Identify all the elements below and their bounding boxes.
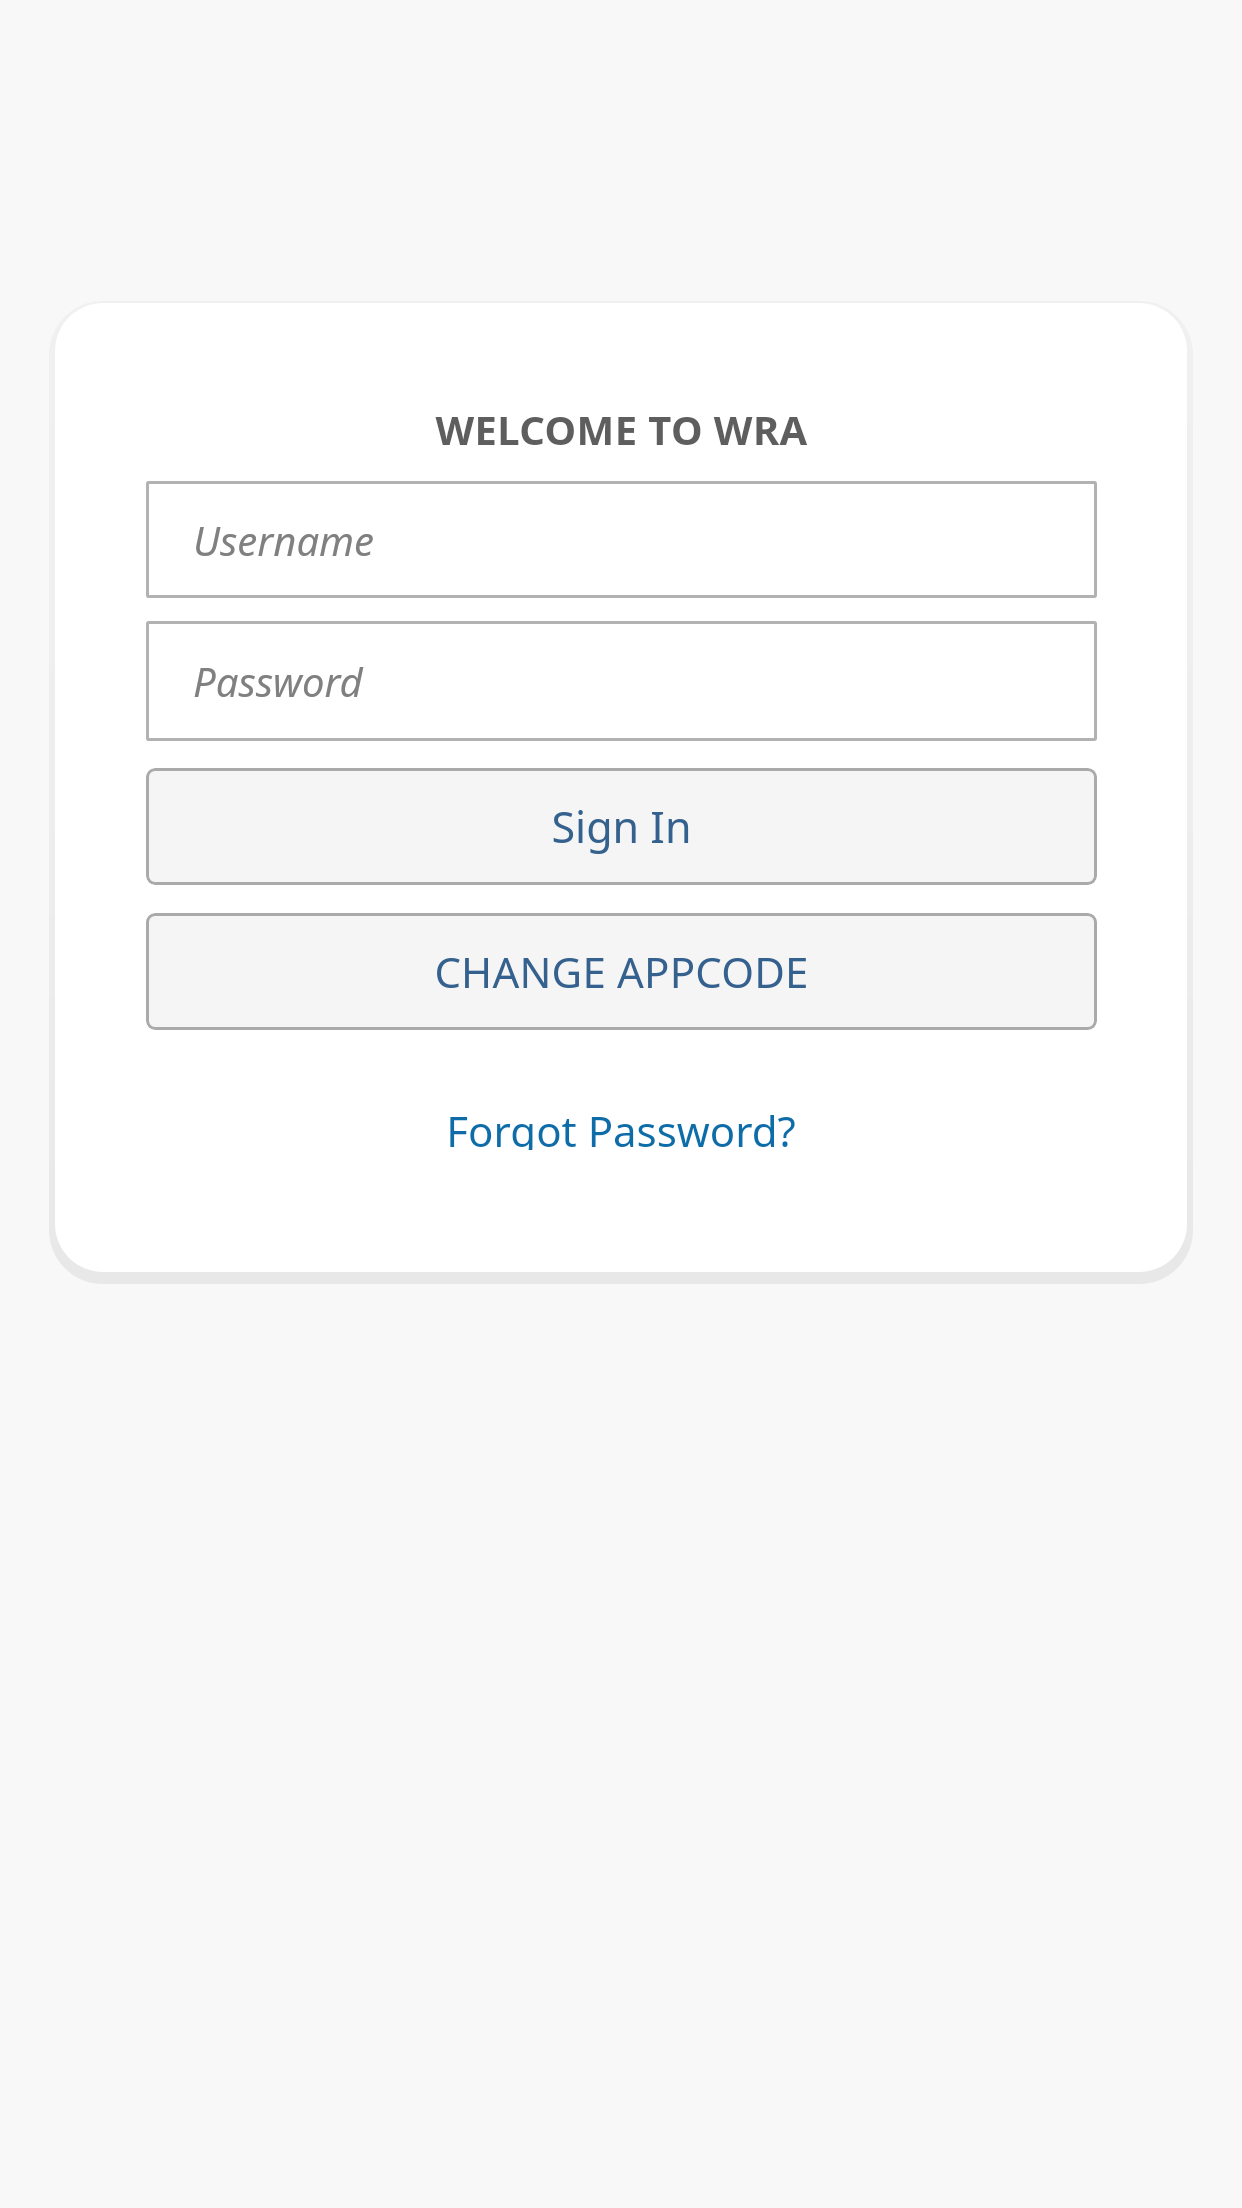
button[interactable]: CHANGE APPCODE <box>146 913 1097 1030</box>
button[interactable]: Forgot Password? <box>436 1098 806 1154</box>
staticText: Sign In <box>551 797 692 856</box>
button[interactable]: Password <box>146 621 1097 741</box>
button[interactable]: Sign In <box>146 768 1097 885</box>
staticText: WELCOME TO WRA <box>435 402 808 456</box>
button[interactable]: Username <box>146 481 1097 598</box>
staticText: Forgot Password? <box>446 1102 796 1150</box>
staticText: Password <box>193 654 363 708</box>
staticText: Username <box>193 513 375 567</box>
staticText: CHANGE APPCODE <box>434 943 809 1000</box>
